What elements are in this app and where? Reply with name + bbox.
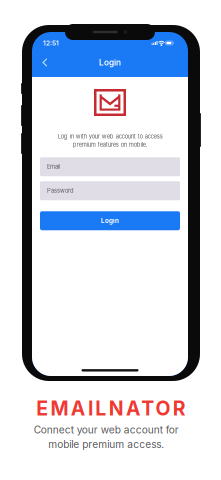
staticText: Connect your web account for mobile prem… xyxy=(33,424,178,450)
button[interactable]: Back xyxy=(37,52,52,72)
button[interactable]: Password xyxy=(40,181,180,200)
staticText: Password xyxy=(47,187,74,194)
button[interactable]: Email xyxy=(40,157,180,176)
staticText: EMAILNATOR xyxy=(36,397,186,420)
staticText: Email xyxy=(47,163,60,170)
staticText: 12:51 xyxy=(43,39,59,47)
staticText: Login xyxy=(99,57,121,67)
button[interactable]: Login xyxy=(40,211,180,230)
staticText: Log in with your web account to access p… xyxy=(57,133,162,148)
staticText: Login xyxy=(101,217,119,225)
